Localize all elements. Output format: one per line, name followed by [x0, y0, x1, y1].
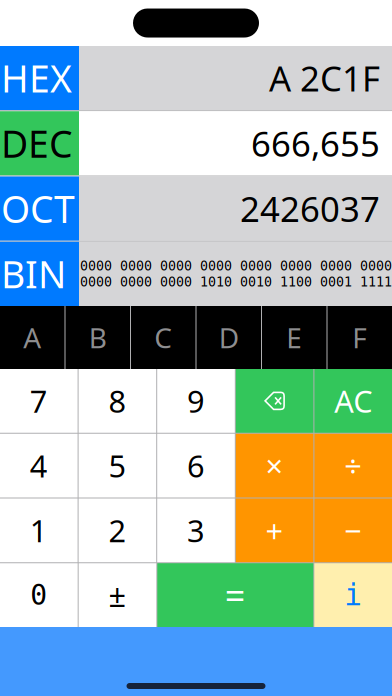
button[interactable]: 0: [0, 563, 78, 627]
button[interactable]: Delete: [236, 369, 313, 433]
button[interactable]: D: [196, 306, 261, 369]
button[interactable]: C: [131, 306, 195, 369]
button[interactable]: DEC: [0, 111, 79, 175]
staticText: 1: [30, 510, 48, 551]
button[interactable]: +: [236, 498, 313, 562]
staticText: 6: [187, 445, 205, 486]
button[interactable]: 5: [79, 434, 156, 498]
button[interactable]: B: [65, 306, 130, 369]
staticText: A 2C1F: [269, 55, 380, 101]
button[interactable]: 9: [157, 369, 235, 433]
staticText: 666,655: [251, 120, 380, 166]
button[interactable]: 1: [0, 498, 78, 562]
staticText: F: [352, 319, 367, 356]
button[interactable]: ±: [79, 563, 156, 627]
button[interactable]: 2: [79, 498, 156, 562]
staticText: ×: [266, 445, 284, 486]
button[interactable]: 4: [0, 434, 78, 498]
staticText: OCT: [1, 184, 75, 233]
staticText: 0000 0000 0000 0000 0000 0000 0000 0000: [80, 258, 392, 273]
staticText: C: [154, 319, 172, 356]
staticText: 3: [187, 510, 205, 551]
staticText: D: [219, 319, 239, 356]
button[interactable]: i: [314, 563, 392, 627]
staticText: 9: [187, 380, 205, 421]
staticText: HEX: [1, 53, 72, 103]
staticText: AC: [334, 380, 372, 421]
button[interactable]: 8: [79, 369, 156, 433]
staticText: B: [89, 319, 107, 356]
staticText: −: [344, 510, 362, 551]
staticText: 2: [108, 510, 126, 551]
staticText: 4: [30, 445, 48, 486]
staticText: E: [286, 319, 302, 356]
staticText: ±: [108, 575, 126, 615]
button[interactable]: 6: [157, 434, 235, 498]
button[interactable]: ÷: [314, 434, 392, 498]
button[interactable]: =: [157, 563, 313, 627]
staticText: +: [266, 510, 284, 551]
staticText: 8: [108, 380, 126, 421]
button[interactable]: OCT: [0, 176, 79, 241]
button[interactable]: BIN: [0, 242, 79, 306]
staticText: 2426037: [240, 186, 380, 232]
staticText: A: [23, 319, 41, 356]
button[interactable]: 3: [157, 498, 235, 562]
button[interactable]: 7: [0, 369, 78, 433]
button[interactable]: A: [0, 306, 64, 369]
button[interactable]: AC: [314, 369, 392, 433]
staticText: 7: [30, 380, 48, 421]
staticText: =: [225, 571, 246, 619]
staticText: 0000 0000 0000 1010 0010 1100 0001 1111: [80, 274, 392, 289]
staticText: DEC: [1, 119, 73, 168]
button[interactable]: F: [327, 306, 392, 369]
button[interactable]: −: [314, 498, 392, 562]
staticText: 5: [108, 445, 126, 486]
staticText: i: [344, 578, 362, 612]
staticText: BIN: [1, 249, 66, 299]
staticText: 0: [30, 579, 47, 611]
button[interactable]: HEX: [0, 46, 79, 110]
button[interactable]: ×: [236, 434, 313, 498]
staticText: ÷: [344, 445, 362, 486]
button[interactable]: E: [262, 306, 326, 369]
